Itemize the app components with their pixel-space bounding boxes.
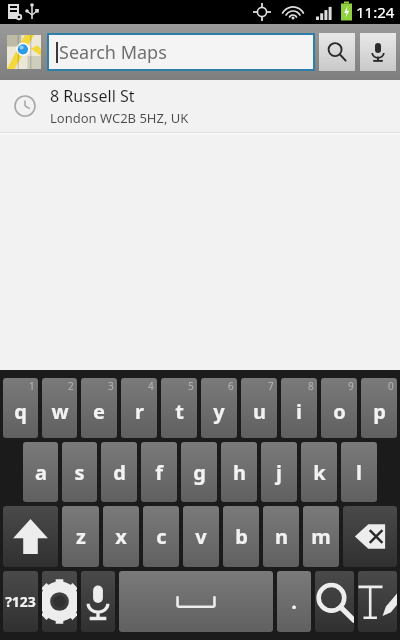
staticText: 0 (388, 379, 394, 393)
button[interactable]: Search (315, 571, 354, 632)
button[interactable]: Delete (343, 506, 397, 567)
button[interactable]: . (277, 571, 311, 632)
staticText: 9 (348, 379, 354, 393)
staticText: v (195, 523, 207, 550)
staticText: m (311, 523, 331, 550)
staticText: p (373, 398, 386, 425)
staticText: 2 (68, 379, 74, 393)
button[interactable]: v (183, 506, 219, 567)
staticText: a (35, 459, 47, 486)
staticText: f (155, 459, 163, 486)
button[interactable]: 7 (241, 378, 277, 438)
button[interactable]: Voice search (360, 33, 396, 71)
staticText: 7 (268, 379, 274, 393)
button[interactable]: Space (119, 571, 273, 632)
staticText: c (156, 523, 167, 550)
staticText: Search Maps (59, 40, 167, 65)
button[interactable]: h (221, 442, 257, 502)
button[interactable]: b (223, 506, 259, 567)
staticText: y (213, 398, 225, 425)
staticText: n (275, 523, 288, 550)
staticText: 6 (228, 379, 234, 393)
button[interactable]: Settings (42, 571, 77, 632)
button[interactable]: 2 (42, 378, 77, 438)
button[interactable]: 9 (321, 378, 357, 438)
staticText: b (235, 523, 248, 550)
button[interactable]: 1 (3, 378, 38, 438)
button[interactable]: Shift (3, 506, 58, 567)
button[interactable]: 0 (361, 378, 397, 438)
button[interactable]: 4 (121, 378, 157, 438)
staticText: k (313, 459, 326, 486)
staticText: w (51, 398, 69, 425)
button[interactable]: f (141, 442, 177, 502)
staticText: u (253, 398, 266, 425)
button[interactable]: 8 Russell St (0, 80, 400, 132)
staticText: 8 Russell St (50, 85, 135, 107)
button[interactable]: s (62, 442, 97, 502)
staticText: 4 (148, 379, 154, 393)
button[interactable]: Maps (4, 32, 44, 72)
staticText: London WC2B 5HZ, UK (50, 109, 189, 127)
staticText: l (356, 459, 362, 486)
staticText: x (115, 523, 127, 550)
staticText: r (135, 398, 144, 425)
button[interactable]: l (341, 442, 377, 502)
staticText: g (193, 459, 206, 486)
staticText: e (93, 398, 105, 425)
staticText: 8 (308, 379, 314, 393)
staticText: z (76, 523, 86, 550)
button[interactable]: d (101, 442, 137, 502)
staticText: . (291, 588, 297, 615)
button[interactable]: j (261, 442, 297, 502)
button[interactable]: Voice input (81, 571, 115, 632)
button[interactable]: n (263, 506, 299, 567)
staticText: o (333, 398, 346, 425)
button[interactable]: Search (319, 33, 355, 71)
staticText: q (14, 398, 27, 425)
button[interactable]: a (23, 442, 58, 502)
button[interactable]: 6 (201, 378, 237, 438)
staticText: d (113, 459, 126, 486)
staticText: ?123 (5, 592, 36, 611)
staticText: 5 (188, 379, 194, 393)
button[interactable]: Handwriting (358, 571, 397, 632)
staticText: s (74, 459, 85, 486)
button[interactable]: 3 (81, 378, 117, 438)
button[interactable]: ?123 (3, 571, 38, 632)
staticText: h (233, 459, 246, 486)
button[interactable]: z (62, 506, 99, 567)
button[interactable]: Search Maps (49, 35, 313, 69)
staticText: i (296, 398, 302, 425)
staticText: 3 (108, 379, 114, 393)
button[interactable]: k (301, 442, 337, 502)
button[interactable]: 8 (281, 378, 317, 438)
button[interactable]: c (143, 506, 179, 567)
staticText: 11:24 (356, 2, 395, 22)
staticText: t (175, 398, 184, 425)
button[interactable]: g (181, 442, 217, 502)
button[interactable]: x (103, 506, 139, 567)
button[interactable]: 5 (161, 378, 197, 438)
staticText: 1 (29, 379, 35, 393)
staticText: j (276, 459, 282, 486)
button[interactable]: m (303, 506, 339, 567)
